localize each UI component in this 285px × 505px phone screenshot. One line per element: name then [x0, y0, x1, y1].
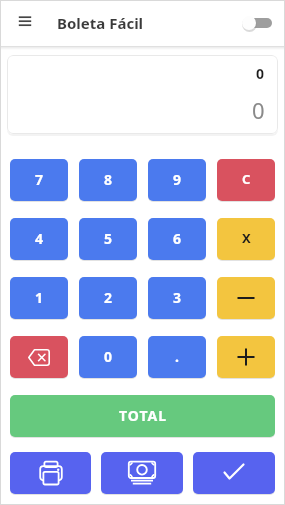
- button[interactable]: 3: [148, 277, 206, 319]
- button[interactable]: 4: [10, 218, 68, 260]
- button[interactable]: 0: [79, 336, 137, 378]
- button[interactable]: [217, 277, 275, 319]
- staticText: .: [175, 347, 179, 366]
- staticText: C: [242, 170, 251, 188]
- staticText: 6: [173, 229, 182, 248]
- staticText: X: [242, 229, 251, 247]
- button[interactable]: [0, 16, 50, 30]
- button[interactable]: [242, 8, 272, 38]
- button[interactable]: [217, 336, 275, 378]
- staticText: 8: [104, 170, 113, 189]
- button[interactable]: [101, 452, 183, 494]
- button[interactable]: 5: [79, 218, 137, 260]
- staticText: TOTAL: [119, 406, 168, 425]
- button[interactable]: TOTAL: [10, 395, 275, 437]
- button[interactable]: 8: [79, 159, 137, 201]
- staticText: 0: [256, 64, 265, 83]
- button[interactable]: 7: [10, 159, 68, 201]
- button[interactable]: C: [217, 159, 275, 201]
- button[interactable]: [10, 452, 91, 494]
- staticText: 5: [104, 229, 113, 248]
- button[interactable]: [193, 452, 275, 494]
- staticText: 1: [35, 288, 44, 307]
- staticText: 4: [35, 229, 44, 248]
- staticText: Boleta Fácil: [57, 13, 144, 33]
- staticText: 7: [35, 170, 44, 189]
- button[interactable]: X: [217, 218, 275, 260]
- button[interactable]: 2: [79, 277, 137, 319]
- staticText: 2: [104, 288, 113, 307]
- button[interactable]: [10, 336, 68, 378]
- staticText: 0: [252, 95, 265, 125]
- staticText: 0: [104, 347, 113, 366]
- staticText: 3: [173, 288, 182, 307]
- button[interactable]: .: [148, 336, 206, 378]
- button[interactable]: 1: [10, 277, 68, 319]
- staticText: 9: [173, 170, 182, 189]
- button[interactable]: 9: [148, 159, 206, 201]
- button[interactable]: 6: [148, 218, 206, 260]
